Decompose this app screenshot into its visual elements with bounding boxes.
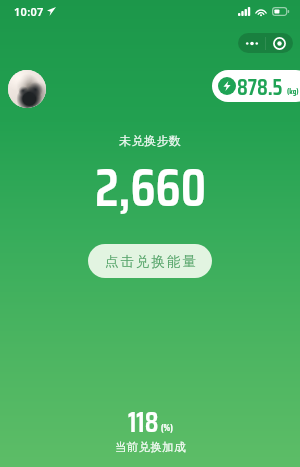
staticText: 点击兑换能量	[104, 253, 197, 270]
staticText: 118	[128, 400, 159, 444]
button[interactable]: More options	[238, 33, 293, 53]
staticText: 2,660	[95, 146, 206, 229]
staticText: 10:07	[14, 4, 44, 19]
button[interactable]: Profile avatar	[8, 70, 46, 108]
button[interactable]: 878.5	[212, 70, 300, 102]
staticText: (kg)	[287, 85, 299, 98]
staticText: 未兑换步数	[119, 133, 181, 148]
staticText: 878.5	[237, 70, 283, 102]
staticText: (%)	[161, 421, 173, 435]
staticText: 当前兑换加成	[115, 440, 186, 454]
button[interactable]: 点击兑换能量	[88, 244, 212, 278]
